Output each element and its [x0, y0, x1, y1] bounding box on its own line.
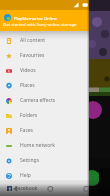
staticText: Help [20, 172, 31, 179]
staticText: Places [20, 82, 35, 89]
staticText: Facebook [15, 185, 38, 192]
button[interactable]: Help [0, 168, 89, 183]
staticText: Videos [20, 67, 36, 74]
button[interactable]: Videos [0, 63, 89, 78]
button[interactable]: All content [0, 33, 89, 48]
button[interactable]: Favourites [0, 48, 89, 63]
staticText: All content [20, 37, 46, 44]
staticText: Settings [20, 157, 40, 164]
staticText: PlayMemories Online [14, 15, 58, 21]
button[interactable]: Home network [0, 138, 89, 153]
staticText: Home network [20, 142, 55, 149]
staticText: Camera effects [20, 97, 56, 104]
button[interactable]: Folders [0, 108, 89, 123]
button[interactable]: Faces [0, 123, 89, 138]
button[interactable]: Facebook [0, 181, 89, 196]
button[interactable]: Places [0, 78, 89, 93]
staticText: Get started with Sony online storage [3, 21, 77, 27]
staticText: Favourites [20, 52, 45, 59]
button[interactable]: Settings [0, 153, 89, 168]
staticText: Faces [20, 127, 34, 134]
button[interactable]: Camera effects [0, 93, 89, 108]
staticText: Folders [20, 112, 38, 119]
